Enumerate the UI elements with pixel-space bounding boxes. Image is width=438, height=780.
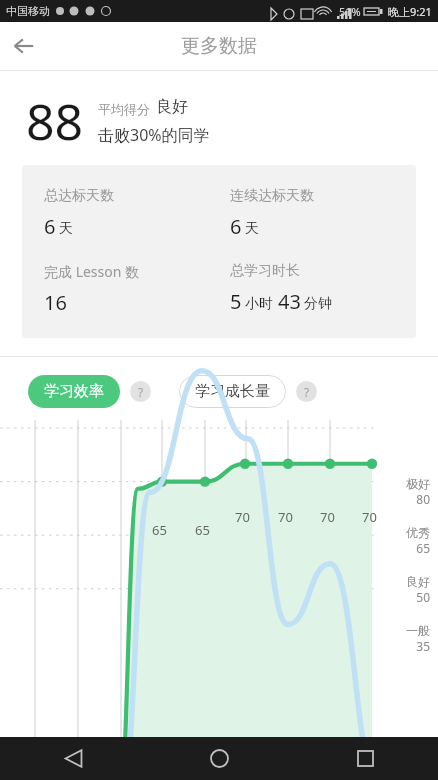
button[interactable]: Recents: [292, 737, 438, 780]
staticText: 良好: [406, 574, 430, 589]
button[interactable]: Back: [0, 737, 146, 780]
staticText: 一般: [406, 623, 430, 638]
staticText: 5: [230, 288, 242, 315]
staticText: 50: [416, 589, 430, 605]
button[interactable]: 学习成长量: [179, 375, 286, 408]
staticText: 65: [416, 540, 430, 556]
staticText: 完成 Lesson 数: [44, 262, 140, 281]
staticText: 中国移动: [6, 4, 50, 18]
staticText: 小时: [245, 295, 273, 313]
staticText: 88: [26, 87, 84, 155]
staticText: 51%: [339, 4, 361, 19]
staticText: 天: [245, 220, 259, 238]
staticText: 80: [416, 491, 430, 507]
staticText: 更多数据: [181, 34, 257, 58]
staticText: 6: [230, 213, 242, 240]
staticText: 70: [278, 508, 293, 526]
staticText: 70: [235, 508, 250, 526]
staticText: 良好: [156, 97, 188, 117]
staticText: 6: [44, 213, 56, 240]
staticText: 70: [320, 508, 335, 526]
staticText: 16: [44, 289, 67, 316]
staticText: 35: [416, 638, 430, 654]
button[interactable]: Back: [0, 22, 48, 70]
staticText: 极好: [406, 476, 430, 491]
staticText: 天: [59, 220, 73, 238]
staticText: 43: [278, 288, 301, 315]
staticText: 晚上9:21: [388, 4, 432, 19]
staticText: 总学习时长: [230, 262, 300, 280]
staticText: 70: [362, 508, 377, 526]
staticText: 连续达标天数: [230, 187, 314, 205]
staticText: 平均得分: [98, 101, 150, 117]
staticText: 学习成长量: [195, 382, 270, 401]
button[interactable]: Help: [296, 381, 317, 402]
staticText: 总达标天数: [44, 187, 114, 205]
button[interactable]: Home: [146, 737, 292, 780]
staticText: 分钟: [304, 295, 332, 313]
button[interactable]: 学习效率: [28, 375, 120, 408]
staticText: 优秀: [406, 525, 430, 540]
staticText: 65: [152, 521, 167, 539]
staticText: 击败30%的同学: [98, 124, 210, 146]
button[interactable]: Help: [130, 381, 151, 402]
staticText: ?: [138, 384, 144, 400]
staticText: 学习效率: [44, 382, 104, 401]
staticText: ?: [304, 384, 310, 400]
staticText: 65: [195, 521, 210, 539]
